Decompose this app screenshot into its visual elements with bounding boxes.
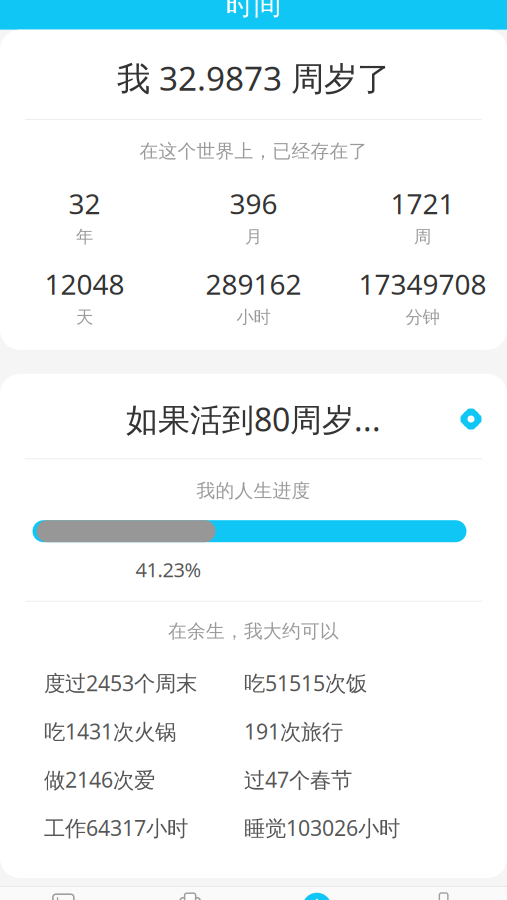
staticText: 天	[76, 306, 93, 328]
staticText: 我的人生进度	[196, 479, 310, 502]
staticText: 吃1431次火锅	[44, 717, 176, 745]
staticText: 吃51515次饭	[244, 669, 367, 697]
button[interactable]: 时间	[253, 887, 380, 900]
staticText: 32	[68, 185, 100, 222]
staticText: 396	[229, 185, 277, 222]
staticText: 月	[245, 226, 262, 247]
staticText: 1721	[390, 185, 454, 222]
staticText: 41.23%	[135, 556, 201, 583]
staticText: 过47个春节	[244, 765, 352, 794]
staticText: 工作64317小时	[44, 814, 188, 842]
button[interactable]: 更多	[380, 887, 507, 900]
staticText: 12048	[44, 265, 124, 302]
button[interactable]: 日记本	[0, 887, 127, 900]
staticText: 周	[414, 226, 431, 247]
staticText: 在余生，我大约可以	[168, 620, 339, 643]
button[interactable]: 大事记	[127, 887, 254, 900]
staticText: 如果活到80周岁...	[126, 398, 381, 440]
staticText: 我 32.9873 周岁了	[117, 56, 390, 100]
staticText: 在这个世界上，已经存在了	[139, 140, 367, 163]
button[interactable]: 设置	[459, 407, 483, 431]
staticText: 度过2453个周末	[44, 669, 197, 697]
staticText: 小时	[236, 306, 270, 328]
staticText: 睡觉103026小时	[244, 814, 400, 842]
staticText: 289162	[205, 265, 301, 302]
staticText: 分钟	[405, 306, 439, 328]
staticText: 191次旅行	[244, 717, 343, 745]
staticText: 年	[76, 226, 93, 247]
staticText: 时间	[225, 0, 281, 22]
staticText: 做2146次爱	[44, 765, 155, 794]
staticText: 17349708	[358, 265, 486, 302]
